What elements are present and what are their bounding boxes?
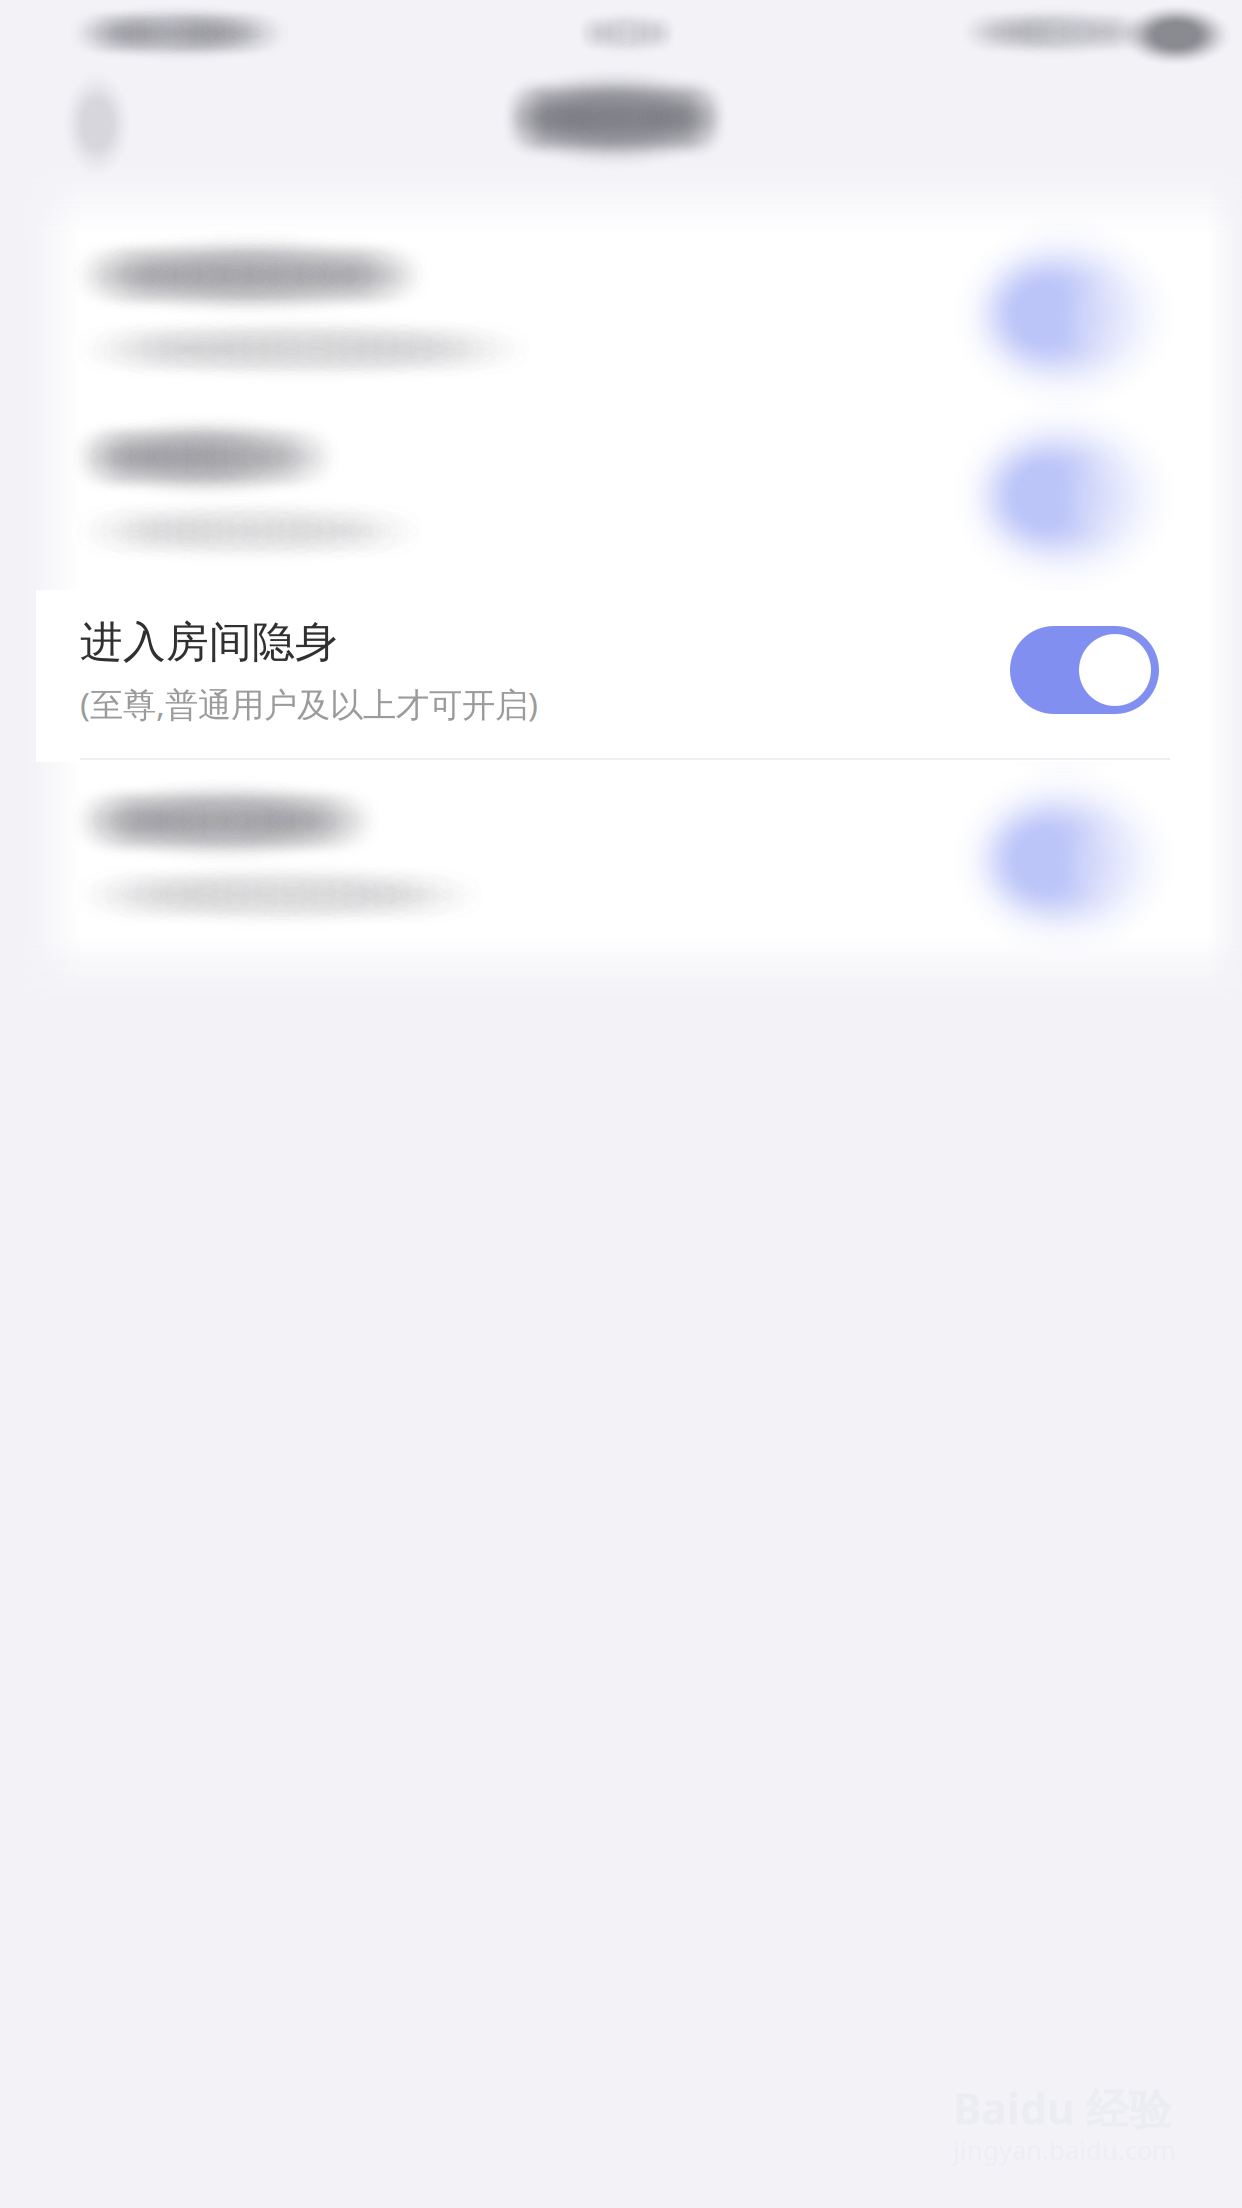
staticText: (至尊,普通用户及以上才可开启) — [80, 682, 538, 726]
staticText: 进入房间隐身 — [80, 616, 338, 668]
button[interactable]: 进入房间隐身 — [36, 590, 1206, 762]
